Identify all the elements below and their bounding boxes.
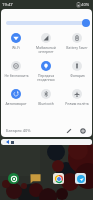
button[interactable]: Не беспокоить — [1, 61, 31, 78]
button[interactable]: Мобильный интернет — [31, 33, 61, 54]
staticText: Режим полёта — [65, 101, 89, 106]
staticText: Передача геоданных — [37, 73, 55, 82]
button[interactable]: Передача геоданных — [31, 61, 61, 82]
staticText: Автоповорот — [5, 101, 27, 106]
button[interactable]: Chrome — [53, 173, 64, 184]
staticText: Фонарик — [70, 73, 85, 78]
staticText: Батарея 40% — [6, 128, 31, 133]
button[interactable]: Автоповорот — [1, 89, 31, 106]
button[interactable]: Фонарик — [62, 61, 92, 78]
button[interactable]: Settings — [77, 125, 88, 136]
staticText: Bluetooth — [38, 101, 54, 106]
button[interactable]: Telegram — [75, 173, 86, 184]
staticText: 19:47 — [2, 2, 13, 8]
button[interactable]: Bluetooth — [31, 89, 61, 106]
button[interactable]: Notes — [30, 173, 41, 184]
staticText: 40% — [81, 2, 90, 8]
button[interactable]: Режим полёта — [62, 89, 92, 106]
staticText: Battery Saver — [66, 45, 88, 50]
staticText: Мобильный интернет — [36, 45, 56, 54]
staticText: Не беспокоить — [4, 73, 29, 78]
button[interactable]: Edit tiles — [63, 125, 74, 136]
button[interactable]: Battery Saver — [62, 33, 92, 50]
button[interactable]: WhatsApp — [8, 173, 19, 184]
button[interactable] — [6, 21, 87, 25]
button[interactable]: Wi-Fi — [1, 33, 31, 50]
other: Brightness — [82, 19, 90, 27]
button[interactable]: Media player — [1, 139, 92, 145]
staticText: Wi-Fi — [12, 45, 20, 50]
